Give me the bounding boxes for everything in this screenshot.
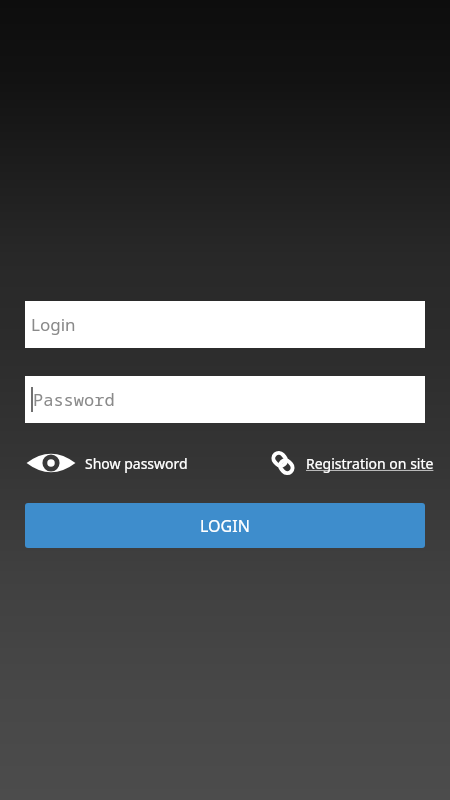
staticText: Show password bbox=[85, 454, 188, 473]
button[interactable]: LOGIN bbox=[25, 503, 425, 548]
staticText: Password bbox=[33, 388, 115, 411]
button[interactable]: Login bbox=[25, 301, 425, 348]
staticText: Registration on site bbox=[306, 454, 434, 473]
staticText: LOGIN bbox=[200, 515, 250, 537]
button[interactable]: Show password bbox=[25, 445, 188, 481]
other: Show password bbox=[25, 448, 77, 478]
staticText: Login bbox=[31, 313, 76, 336]
button[interactable]: Password bbox=[25, 376, 425, 423]
other: Registration on site bbox=[266, 446, 300, 480]
button[interactable]: Registration on site bbox=[266, 445, 434, 481]
